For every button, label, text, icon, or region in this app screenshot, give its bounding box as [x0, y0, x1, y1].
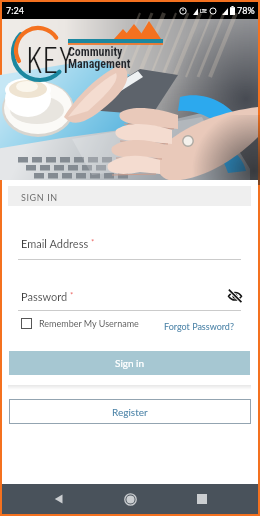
button[interactable]: Show password	[225, 286, 245, 306]
button[interactable]: Home	[115, 484, 145, 514]
staticText: Email Address	[21, 237, 89, 250]
button[interactable]: Remember My Username	[21, 318, 139, 329]
staticText: Register	[112, 406, 148, 418]
button[interactable]: Back	[44, 484, 74, 514]
staticText: Sign in	[115, 357, 145, 369]
staticText: Password	[21, 290, 68, 303]
button[interactable]: Forgot Password?	[164, 321, 234, 332]
staticText: *	[89, 237, 95, 247]
button[interactable]: Sign in	[9, 351, 250, 375]
staticText: SIGN IN	[21, 192, 58, 203]
staticText: LTE	[200, 8, 207, 14]
button[interactable]: Register	[9, 399, 251, 424]
staticText: *	[68, 290, 74, 300]
button[interactable]: Recents	[187, 484, 217, 514]
staticText: 7:24	[6, 5, 24, 16]
staticText: 78%	[237, 5, 255, 16]
staticText: Community	[68, 45, 123, 59]
staticText: Remember My Username	[39, 318, 139, 329]
staticText: Management	[68, 57, 131, 71]
staticText: KEY	[26, 36, 74, 80]
